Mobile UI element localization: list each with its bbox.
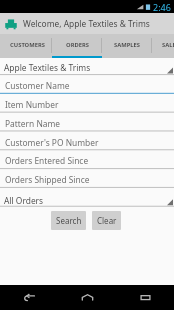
button[interactable] [0,130,174,149]
staticText: Customer's PO Number [5,137,99,148]
button[interactable] [0,168,174,187]
button[interactable]: CUSTOMERS [2,34,52,58]
staticText: Search [56,215,82,226]
button[interactable]: Home [58,285,116,310]
button[interactable] [0,58,174,74]
button[interactable] [0,74,174,93]
staticText: Item Number [5,99,59,110]
staticText: Clear [97,215,117,226]
staticText: ORDERS [66,41,89,49]
button[interactable] [0,112,174,131]
button[interactable]: Clear [92,211,121,230]
staticText: Apple Textiles & Trims [4,62,91,73]
staticText: All Orders [4,195,44,206]
button[interactable] [0,187,174,206]
staticText: Pattern Name [5,118,61,129]
button[interactable]: SAMPLES [102,34,152,58]
staticText: Welcome, Apple Textiles & Trims [23,18,150,29]
staticText: CUSTOMERS [10,41,45,49]
button[interactable]: Search [51,211,86,230]
staticText: Orders Entered Since [5,155,89,166]
staticText: 2:46 [153,1,171,13]
button[interactable]: ORDERS [52,34,102,58]
staticText: SALES [162,41,174,49]
staticText: Orders Shipped Since [5,174,90,185]
button[interactable]: SALES [152,34,174,58]
button[interactable]: Recent apps [116,285,174,310]
staticText: SAMPLES [114,41,140,49]
button[interactable] [0,149,174,168]
button[interactable]: Back [0,285,58,310]
button[interactable] [0,93,174,112]
staticText: Customer Name [5,80,70,91]
